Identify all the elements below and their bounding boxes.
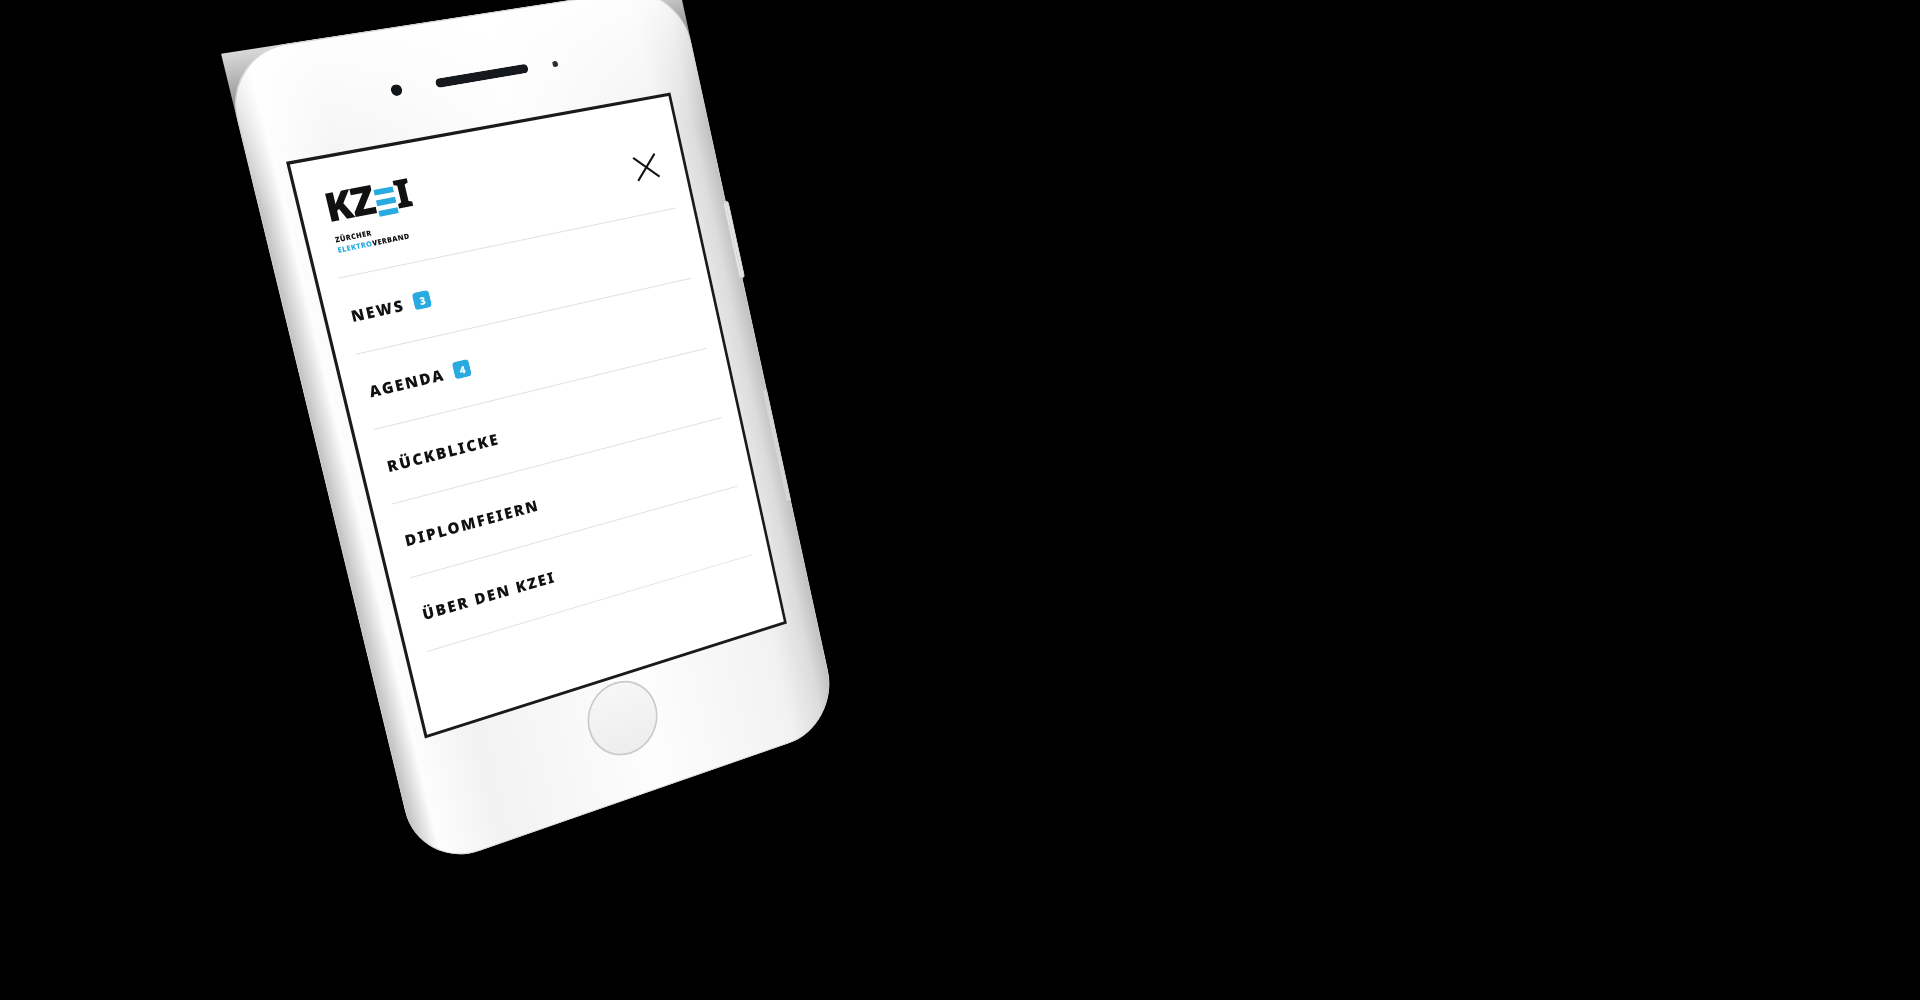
staticText: ZÜRCHER — [334, 228, 373, 246]
button[interactable]: DIPLOMFEIERN — [370, 413, 756, 584]
staticText: 4 — [458, 362, 467, 377]
button[interactable]: ÜBER DEN KZEI — [388, 482, 770, 658]
staticText: KZ — [319, 171, 380, 234]
staticText: I — [388, 164, 417, 220]
button[interactable]: RÜCKBLICKE — [352, 344, 741, 509]
staticText: NEWS — [349, 294, 407, 326]
staticText: ELEKTRO — [337, 239, 374, 256]
staticText: ÜBER DEN KZEI — [420, 566, 558, 624]
button[interactable]: KZ — [319, 164, 422, 256]
button[interactable]: NEWS — [315, 204, 710, 359]
staticText: DIPLOMFEIERN — [403, 494, 541, 550]
staticText: 3 — [418, 293, 427, 308]
staticText: AGENDA — [367, 364, 447, 402]
button[interactable]: Close menu — [622, 142, 670, 192]
staticText: RÜCKBLICKE — [385, 428, 502, 476]
other: Home button — [580, 671, 665, 765]
staticText: VERBAND — [371, 231, 412, 249]
button[interactable]: AGENDA — [334, 274, 725, 434]
